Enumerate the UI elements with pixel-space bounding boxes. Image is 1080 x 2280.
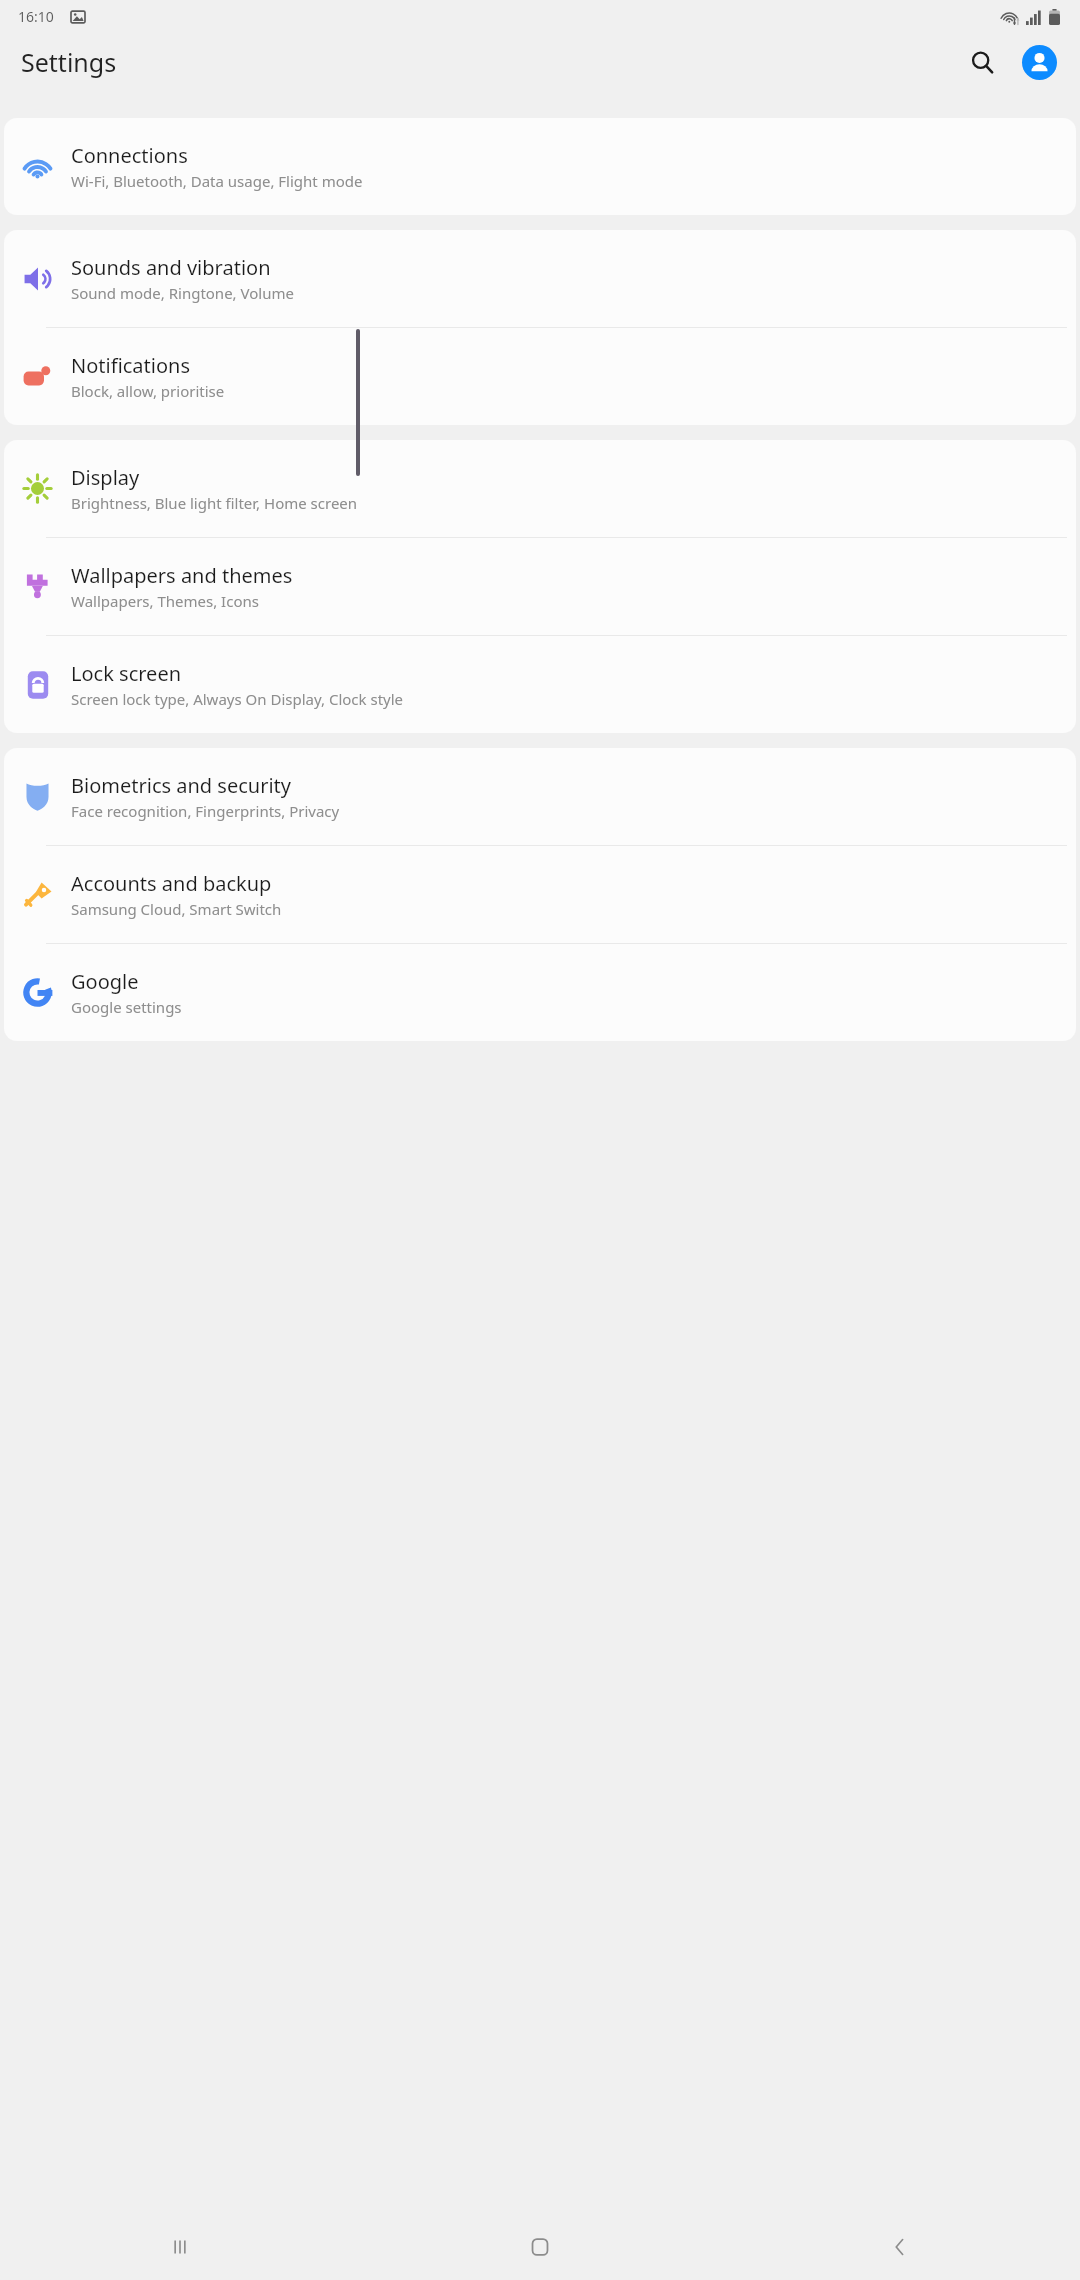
- button[interactable]: Display: [4, 440, 1076, 537]
- button[interactable]: Home: [360, 2213, 720, 2280]
- button[interactable]: Biometrics and security: [4, 748, 1076, 845]
- button[interactable]: Google: [4, 944, 1076, 1041]
- staticText: Biometrics and security: [71, 772, 291, 799]
- staticText: Accounts and backup: [71, 870, 272, 897]
- button[interactable]: Account: [1015, 38, 1063, 86]
- button[interactable]: Sounds and vibration: [4, 230, 1076, 327]
- staticText: 16:10: [18, 7, 54, 26]
- staticText: Sound mode, Ringtone, Volume: [71, 283, 294, 303]
- button[interactable]: Accounts and backup: [4, 846, 1076, 943]
- staticText: Wallpapers and themes: [71, 562, 293, 589]
- staticText: Lock screen: [71, 660, 182, 687]
- staticText: Face recognition, Fingerprints, Privacy: [71, 801, 340, 821]
- staticText: Connections: [71, 142, 188, 169]
- button[interactable]: Back: [720, 2213, 1080, 2280]
- staticText: Block, allow, prioritise: [71, 381, 225, 401]
- button[interactable]: Search: [958, 38, 1006, 86]
- staticText: Wi-Fi, Bluetooth, Data usage, Flight mod…: [71, 171, 363, 191]
- button[interactable]: Notifications: [4, 328, 1076, 425]
- staticText: Display: [71, 464, 140, 491]
- staticText: Screen lock type, Always On Display, Clo…: [71, 689, 404, 709]
- staticText: Google settings: [71, 997, 182, 1017]
- staticText: Google: [71, 968, 139, 995]
- staticText: Notifications: [71, 352, 190, 379]
- staticText: Brightness, Blue light filter, Home scre…: [71, 493, 358, 513]
- staticText: Samsung Cloud, Smart Switch: [71, 899, 282, 919]
- staticText: Wallpapers, Themes, Icons: [71, 591, 259, 611]
- button[interactable]: Recents: [0, 2213, 360, 2280]
- staticText: Settings: [21, 45, 117, 79]
- staticText: Sounds and vibration: [71, 254, 271, 281]
- button[interactable]: Lock screen: [4, 636, 1076, 733]
- button[interactable]: Wallpapers and themes: [4, 538, 1076, 635]
- button[interactable]: Connections: [4, 118, 1076, 215]
